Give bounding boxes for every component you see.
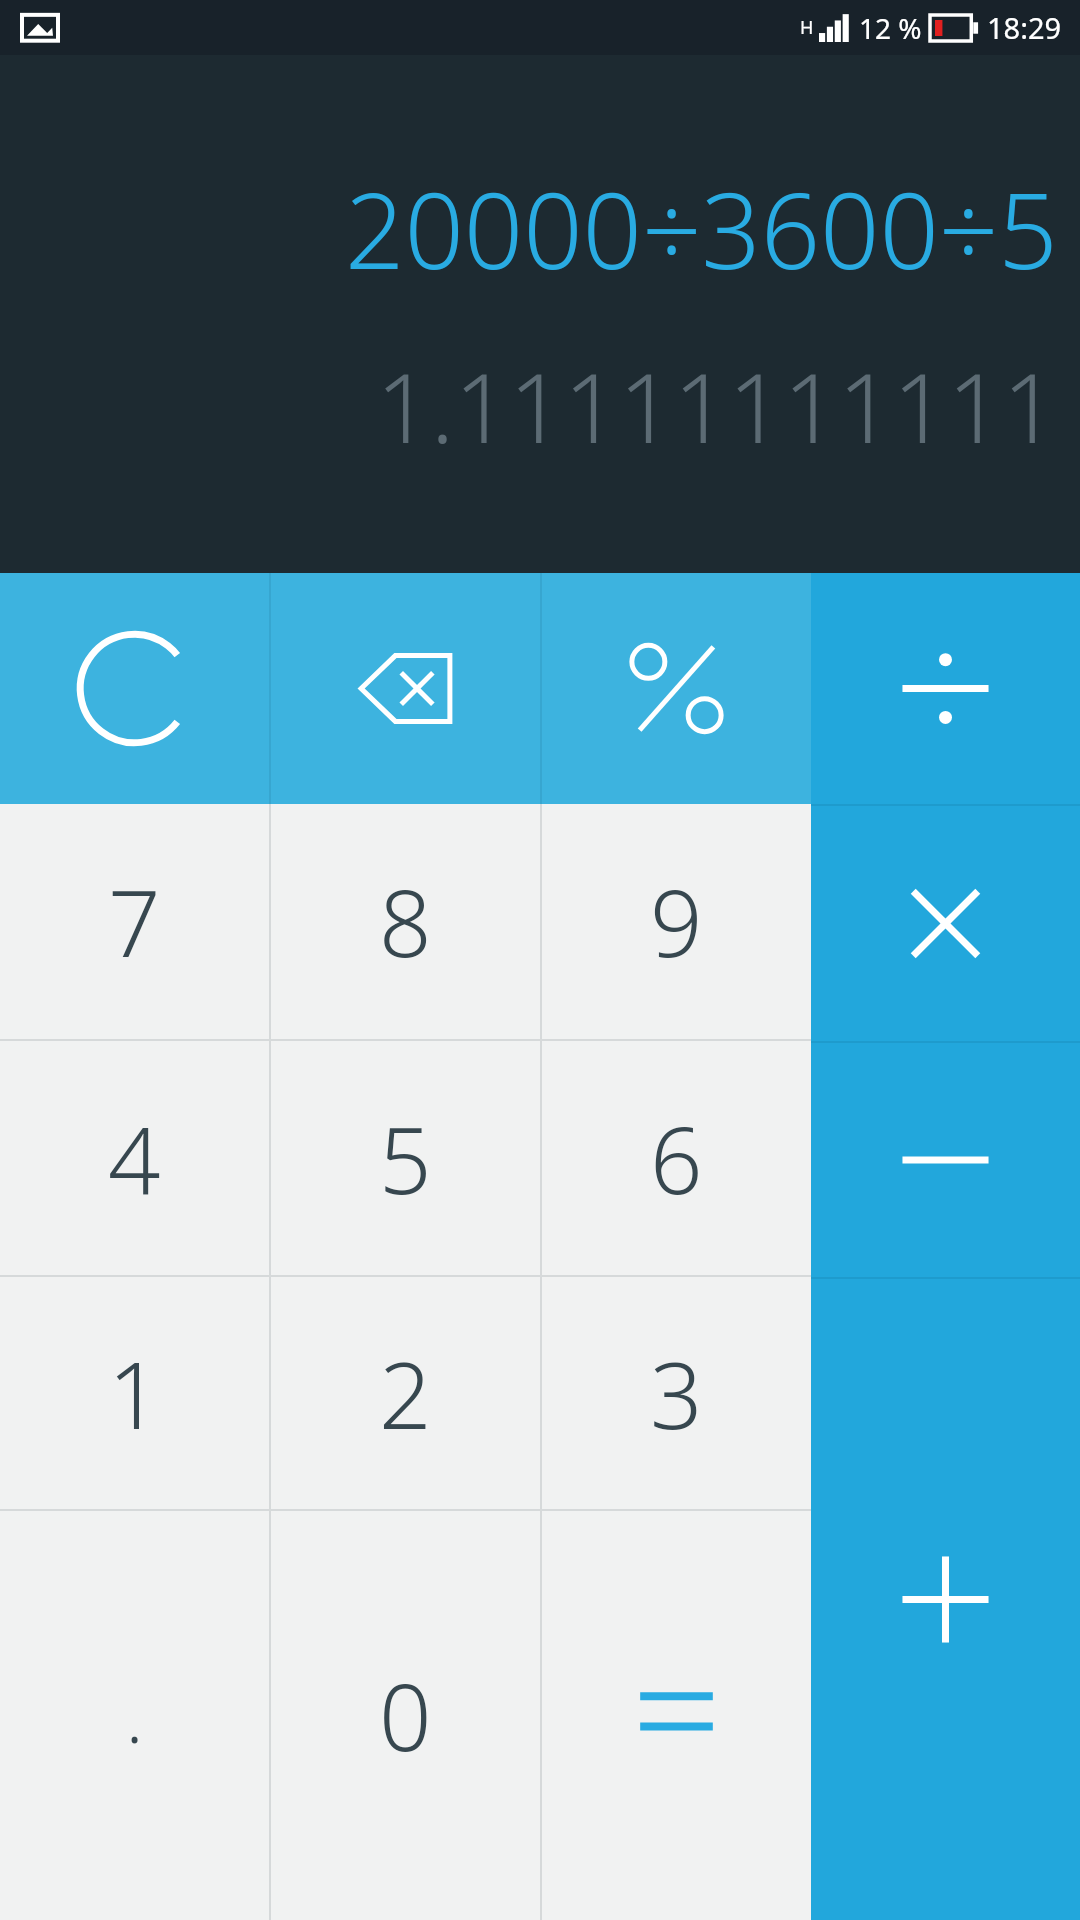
button[interactable]: Clear — [0, 573, 269, 804]
button[interactable]: Backspace — [271, 573, 540, 804]
staticText: 1 — [108, 1331, 161, 1456]
button[interactable]: 1 — [0, 1277, 269, 1509]
button[interactable]: 4 — [0, 1041, 269, 1275]
button[interactable]: 7 — [0, 804, 269, 1039]
staticText: 9 — [650, 859, 703, 984]
staticText: 7 — [108, 859, 161, 984]
staticText: 0 — [379, 1653, 432, 1778]
button[interactable]: 5 — [271, 1041, 540, 1275]
button[interactable]: 2 — [271, 1277, 540, 1509]
staticText: 2 — [379, 1331, 432, 1456]
staticText: 20000÷3600÷5 — [345, 158, 1058, 300]
button[interactable]: Plus — [811, 1279, 1080, 1920]
button[interactable]: Multiply — [811, 806, 1080, 1041]
button[interactable]: 0 — [271, 1511, 540, 1920]
staticText: 3 — [650, 1331, 703, 1456]
staticText: 1.11111111111 — [376, 340, 1058, 471]
button[interactable]: 8 — [271, 804, 540, 1039]
staticText: 12 % — [859, 9, 922, 47]
button[interactable]: Equals — [542, 1511, 811, 1920]
button[interactable]: 3 — [542, 1277, 811, 1509]
staticText: 4 — [108, 1096, 161, 1221]
button[interactable]: Divide — [811, 573, 1080, 804]
staticText: H — [800, 15, 814, 40]
staticText: 18:29 — [987, 8, 1062, 47]
button[interactable]: . — [0, 1511, 269, 1920]
button[interactable]: 6 — [542, 1041, 811, 1275]
button[interactable]: Minus — [811, 1043, 1080, 1277]
staticText: . — [126, 1668, 144, 1763]
staticText: 5 — [379, 1096, 432, 1221]
staticText: 8 — [379, 859, 432, 984]
button[interactable]: Percent — [542, 573, 811, 804]
button[interactable]: 9 — [542, 804, 811, 1039]
staticText: 6 — [650, 1096, 703, 1221]
